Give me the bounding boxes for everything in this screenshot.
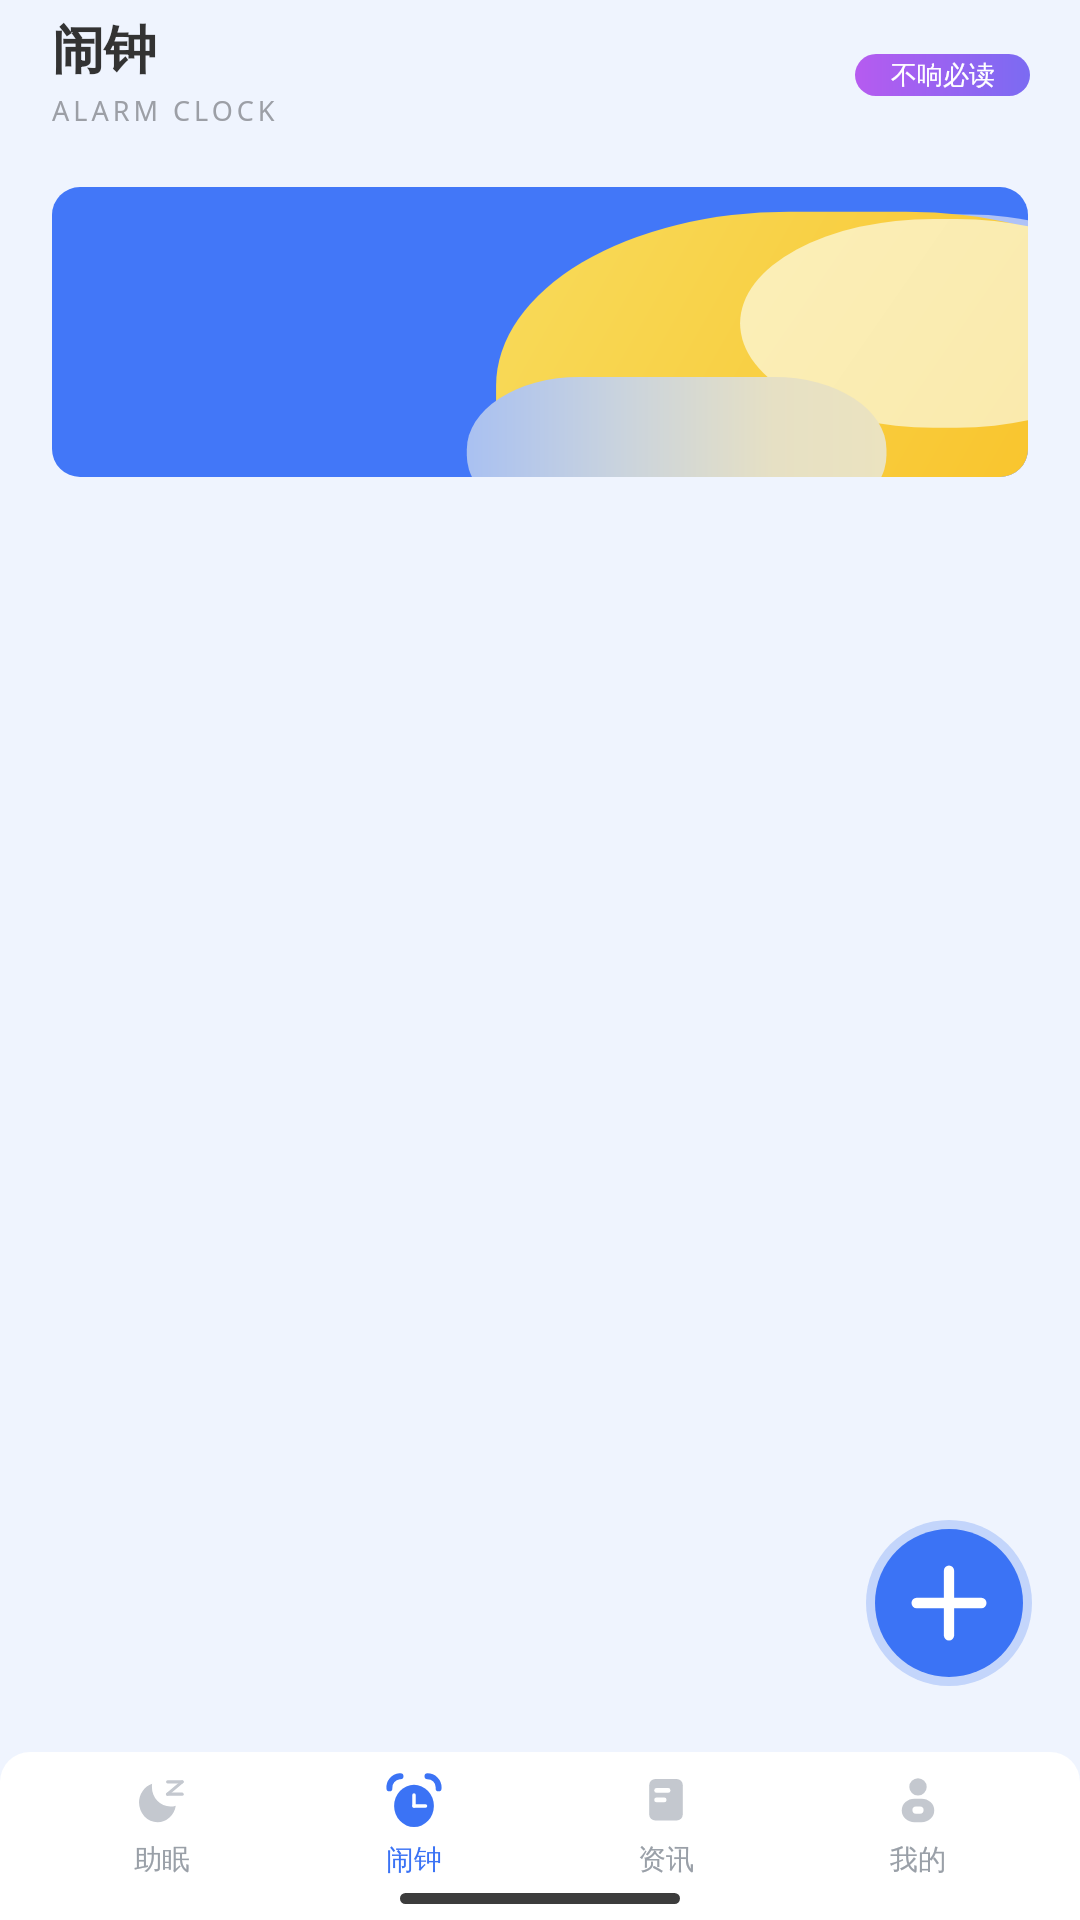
button[interactable] (52, 187, 1028, 477)
staticText: 不响必读 (891, 59, 995, 92)
button[interactable]: Add alarm (866, 1520, 1032, 1686)
staticText: 闹钟 (52, 18, 156, 84)
staticText: 闹钟 (386, 1842, 442, 1877)
button[interactable]: 我的 (828, 1770, 1008, 1881)
staticText: 我的 (890, 1842, 946, 1877)
staticText: ALARM CLOCK (52, 92, 279, 129)
staticText: 资讯 (638, 1842, 694, 1877)
button[interactable]: 助眠 (72, 1770, 252, 1881)
button[interactable]: 闹钟 (324, 1770, 504, 1881)
staticText: 助眠 (134, 1842, 190, 1877)
button[interactable]: 不响必读 (855, 54, 1030, 96)
button[interactable]: 资讯 (576, 1770, 756, 1881)
